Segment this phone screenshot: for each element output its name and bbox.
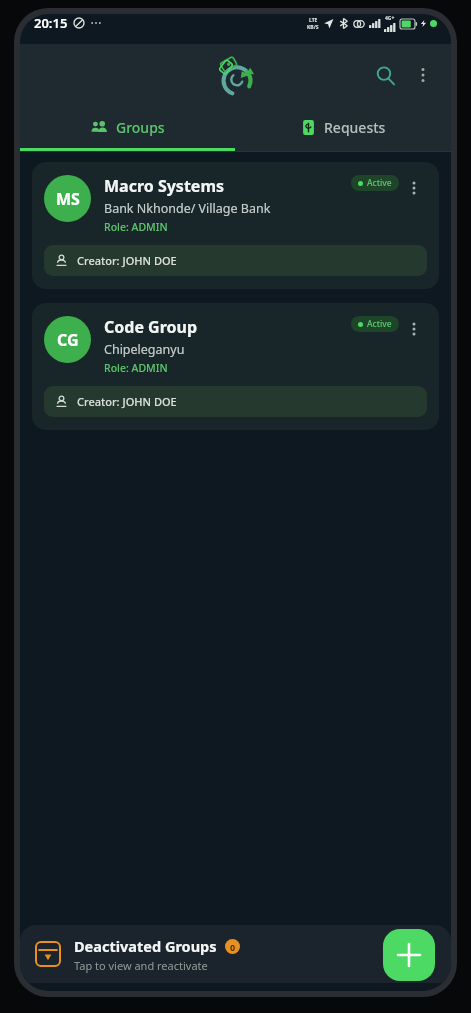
button[interactable]: Groups: [20, 106, 235, 148]
staticText: MS: [56, 188, 80, 210]
button[interactable]: Group options: [401, 175, 427, 201]
button[interactable]: Group options: [401, 316, 427, 342]
staticText: Chipeleganyu: [104, 341, 185, 358]
staticText: Groups: [116, 118, 165, 137]
staticText: CG: [57, 329, 79, 351]
button[interactable]: Requests: [235, 106, 451, 148]
staticText: KB/S: [307, 24, 319, 31]
staticText: Requests: [324, 118, 386, 137]
staticText: Code Group: [104, 316, 198, 338]
staticText: Bank Nkhonde/ Village Bank: [104, 200, 271, 217]
staticText: Active: [367, 177, 392, 189]
staticText: Role: ADMIN: [104, 220, 168, 234]
staticText: 0: [230, 941, 236, 953]
staticText: Creator: JOHN DOE: [77, 394, 177, 409]
staticText: Active: [367, 318, 392, 330]
button[interactable]: Deactivated Groups: [20, 925, 451, 983]
staticText: 20:15: [34, 14, 68, 32]
button[interactable]: CG: [32, 303, 439, 430]
staticText: 4G+: [385, 15, 395, 22]
staticText: Creator: JOHN DOE: [77, 253, 177, 268]
staticText: LTE: [309, 17, 318, 24]
staticText: Macro Systems: [104, 175, 225, 197]
button[interactable]: More options: [405, 57, 441, 93]
staticText: Deactivated Groups: [74, 936, 217, 956]
button[interactable]: MS: [32, 162, 439, 289]
staticText: Tap to view and reactivate: [74, 958, 208, 973]
button[interactable]: Search: [365, 55, 405, 95]
button[interactable]: Create group: [383, 929, 435, 981]
staticText: Role: ADMIN: [104, 361, 168, 375]
